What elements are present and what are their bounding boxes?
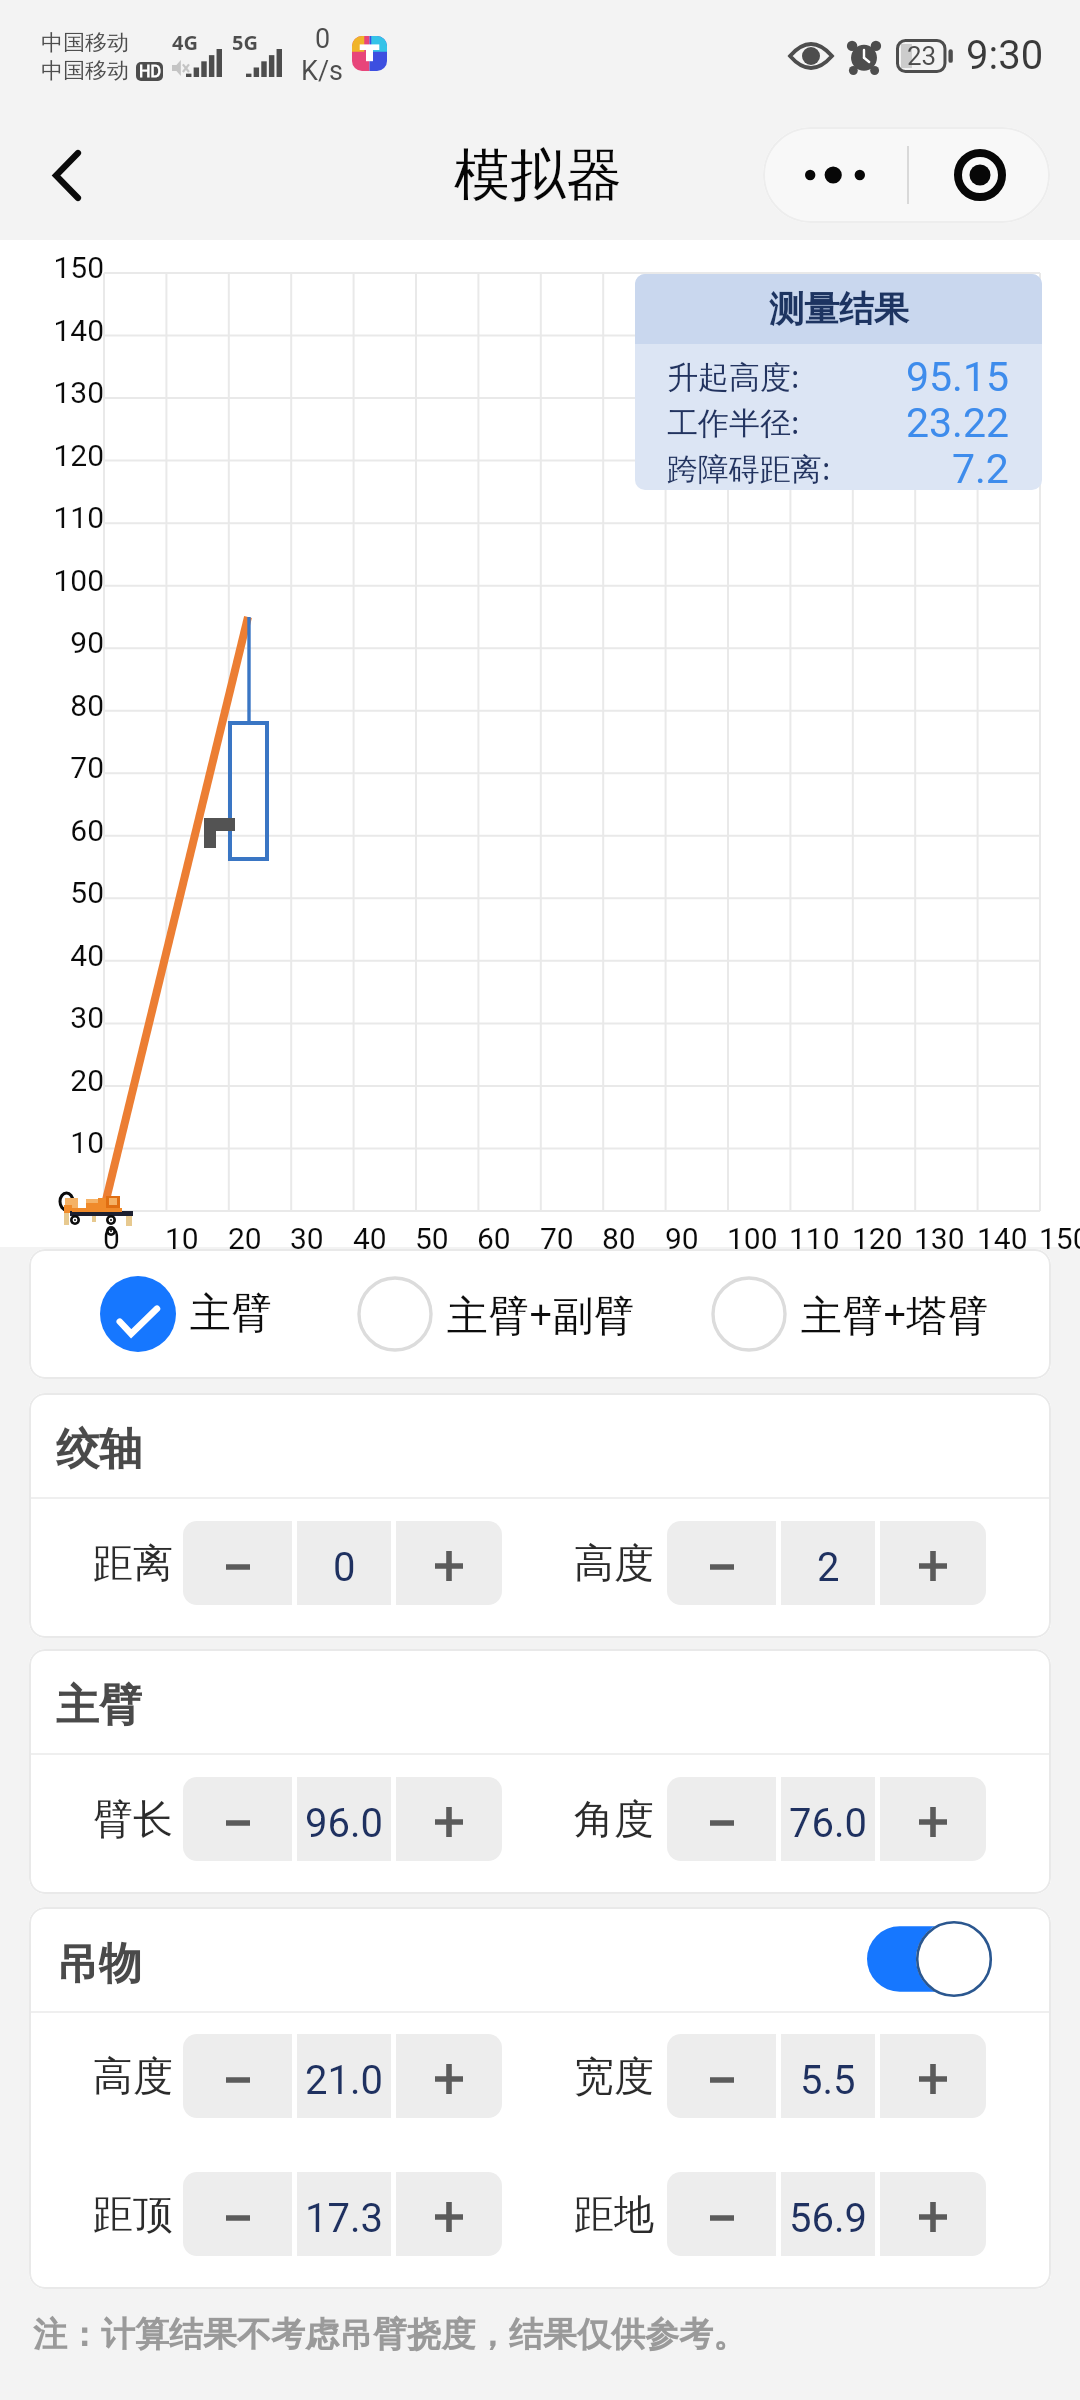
staticText: 4G <box>172 29 198 56</box>
staticText: 80 <box>1 688 104 723</box>
staticText: 120 <box>1 438 104 473</box>
staticText: 0 <box>103 1221 120 1256</box>
button[interactable]: 主臂+副臂 <box>357 1266 635 1362</box>
button[interactable]: Decrease <box>183 2034 292 2118</box>
staticText: 测量结果 <box>769 287 909 331</box>
staticText: 95.15 <box>906 353 1009 399</box>
staticText: 模拟器 <box>454 140 622 211</box>
button[interactable]: Increase <box>880 2172 986 2256</box>
button[interactable]: Decrease <box>667 2172 776 2256</box>
staticText: 100 <box>1 563 104 598</box>
staticText: 130 <box>914 1221 965 1256</box>
button[interactable]: 0 <box>297 1521 391 1605</box>
staticText: 60 <box>477 1221 511 1256</box>
staticText: 0 <box>315 23 331 55</box>
button[interactable]: 21.0 <box>297 2034 391 2118</box>
button[interactable]: Increase <box>880 2034 986 2118</box>
staticText: 40 <box>353 1221 387 1256</box>
staticText: K/s <box>301 55 344 87</box>
button[interactable]: 56.9 <box>781 2172 875 2256</box>
staticText: 距顶 <box>93 2189 173 2239</box>
staticText: 5.5 <box>800 2057 856 2104</box>
staticText: 23 <box>907 41 937 71</box>
staticText: 70 <box>1 750 104 785</box>
staticText: 17.3 <box>305 2195 383 2242</box>
staticText: 21.0 <box>305 2057 383 2104</box>
staticText: 140 <box>977 1221 1028 1256</box>
staticText: 主臂 <box>190 1288 272 1340</box>
staticText: 23.22 <box>906 399 1009 445</box>
staticText: 10 <box>1 1125 104 1160</box>
button[interactable]: Decrease <box>667 2034 776 2118</box>
staticText: 96.0 <box>305 1800 383 1847</box>
staticText: 跨障碍距离: <box>667 447 831 489</box>
staticText: 30 <box>1 1000 104 1035</box>
staticText: 110 <box>1 500 104 535</box>
button[interactable]: Close mini program <box>909 127 1050 223</box>
button[interactable]: Increase <box>880 1777 986 1861</box>
button[interactable]: Increase <box>396 2034 502 2118</box>
staticText: 距离 <box>93 1538 173 1588</box>
staticText: 50 <box>1 875 104 910</box>
staticText: 主臂+副臂 <box>447 1286 635 1342</box>
staticText: 140 <box>1 313 104 348</box>
staticText: 20 <box>228 1221 262 1256</box>
staticText: 100 <box>727 1221 778 1256</box>
staticText: 中国移动 <box>41 29 129 57</box>
staticText: 76.0 <box>789 1800 867 1847</box>
staticText: 吊物 <box>56 1937 142 1991</box>
button[interactable]: Decrease <box>183 1521 292 1605</box>
staticText: 30 <box>290 1221 324 1256</box>
button[interactable]: Decrease <box>667 1777 776 1861</box>
staticText: 0 <box>333 1544 356 1591</box>
staticText: 150 <box>1 250 104 285</box>
staticText: 60 <box>1 813 104 848</box>
staticText: 9:30 <box>966 32 1044 79</box>
staticText: 120 <box>852 1221 903 1256</box>
staticText: 40 <box>1 938 104 973</box>
button[interactable]: Decrease <box>183 1777 292 1861</box>
staticText: 20 <box>1 1063 104 1098</box>
staticText: 50 <box>415 1221 449 1256</box>
staticText: 7.2 <box>952 445 1009 490</box>
staticText: 150 <box>1039 1221 1080 1256</box>
button[interactable]: Decrease <box>183 2172 292 2256</box>
staticText: 90 <box>665 1221 699 1256</box>
button[interactable]: Increase <box>396 1777 502 1861</box>
staticText: 中国移动 <box>41 57 129 85</box>
staticText: 高度 <box>93 2051 173 2101</box>
button[interactable]: Increase <box>396 1521 502 1605</box>
staticText: 10 <box>165 1221 199 1256</box>
staticText: 高度 <box>574 1538 654 1588</box>
staticText: 130 <box>1 375 104 410</box>
staticText: 70 <box>540 1221 574 1256</box>
button[interactable]: More <box>763 127 907 223</box>
button[interactable]: 主臂 <box>100 1266 272 1362</box>
staticText: 56.9 <box>789 2195 867 2242</box>
button[interactable]: 76.0 <box>781 1777 875 1861</box>
button[interactable]: Increase <box>396 2172 502 2256</box>
staticText: 工作半径: <box>667 401 800 443</box>
button[interactable]: 5.5 <box>781 2034 875 2118</box>
staticText: 主臂 <box>56 1679 142 1733</box>
staticText: 宽度 <box>574 2051 654 2101</box>
staticText: 主臂+塔臂 <box>801 1286 989 1342</box>
button[interactable]: 2 <box>781 1521 875 1605</box>
button[interactable]: Back <box>22 130 112 220</box>
button[interactable]: Increase <box>880 1521 986 1605</box>
staticText: 绞轴 <box>56 1423 142 1477</box>
button[interactable]: 17.3 <box>297 2172 391 2256</box>
staticText: 角度 <box>574 1794 654 1844</box>
button[interactable]: Toggle load <box>867 1921 992 1997</box>
button[interactable]: 96.0 <box>297 1777 391 1861</box>
button[interactable]: 主臂+塔臂 <box>711 1266 989 1362</box>
staticText: HD <box>139 62 161 81</box>
staticText: 80 <box>602 1221 636 1256</box>
staticText: 距地 <box>574 2189 654 2239</box>
staticText: 5G <box>232 29 258 56</box>
staticText: 注：计算结果不考虑吊臂挠度，结果仅供参考。 <box>33 2313 747 2356</box>
staticText: 110 <box>789 1221 840 1256</box>
button[interactable]: Decrease <box>667 1521 776 1605</box>
staticText: 升起高度: <box>667 355 800 397</box>
staticText: 2 <box>817 1544 840 1591</box>
